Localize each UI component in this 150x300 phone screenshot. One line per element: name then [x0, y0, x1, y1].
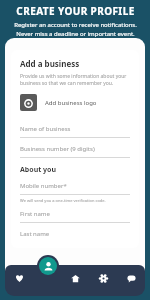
- button[interactable]: Mobile number*: [20, 175, 130, 203]
- button[interactable]: Last name: [20, 223, 130, 240]
- button[interactable]: Name of business: [20, 118, 130, 138]
- staticText: Business number (9 digits): [20, 145, 95, 153]
- button[interactable]: Messages: [117, 274, 145, 296]
- staticText: Add business logo: [45, 99, 97, 107]
- staticText: About you: [20, 165, 56, 175]
- staticText: CREATE YOUR PROFILE: [16, 4, 135, 18]
- button[interactable]: Favourites: [5, 274, 33, 296]
- button[interactable]: Add business logo: [20, 94, 130, 111]
- staticText: Name of business: [20, 125, 71, 133]
- staticText: First name: [20, 210, 50, 218]
- button[interactable]: Business number (9 digits): [20, 138, 130, 158]
- button[interactable]: Home: [61, 274, 89, 296]
- staticText: Mobile number*: [20, 182, 67, 190]
- staticText: Provide us with some information about y…: [20, 73, 130, 87]
- staticText: Register an account to receive notificat…: [14, 21, 137, 29]
- button[interactable]: First name: [20, 203, 130, 223]
- button[interactable]: Profile: [39, 257, 57, 275]
- staticText: Add a business: [20, 58, 80, 69]
- staticText: Never miss a deadline or important event…: [16, 30, 135, 38]
- staticText: We will send you a one-time verification…: [20, 198, 106, 203]
- staticText: Last name: [20, 230, 50, 238]
- button[interactable]: Settings: [89, 274, 117, 296]
